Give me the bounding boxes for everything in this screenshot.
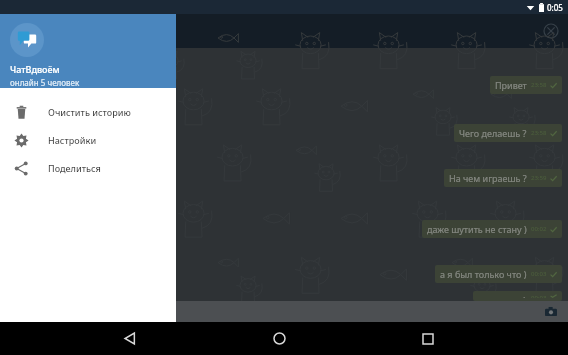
button[interactable]: Чего делаешь ? xyxy=(454,124,562,142)
staticText: Поделиться xyxy=(48,162,101,174)
staticText: Настройки xyxy=(48,134,97,146)
button[interactable]: Настройки xyxy=(0,126,176,154)
button[interactable]: а я был только что ) xyxy=(435,265,562,283)
staticText: 23:58 xyxy=(531,81,547,89)
staticText: а я был только что ) xyxy=(440,268,527,280)
staticText: 00:02 xyxy=(531,225,547,233)
button[interactable]: Back xyxy=(110,322,150,355)
staticText: На чем играешь ? xyxy=(449,172,527,184)
button[interactable]: Поделиться xyxy=(0,154,176,182)
staticText: 23:58 xyxy=(531,129,547,137)
staticText: Чего делаешь ? xyxy=(459,127,527,139)
staticText: 0:05 xyxy=(547,2,563,13)
button[interactable]: Home xyxy=(259,322,299,355)
staticText: онлайн 5 человек xyxy=(10,77,80,88)
button[interactable]: Attach photo xyxy=(542,303,560,321)
staticText: ЧатВдвоём xyxy=(10,63,60,75)
staticText: согласись ) xyxy=(478,294,527,298)
button[interactable]: согласись ) xyxy=(473,291,562,301)
button[interactable]: Очистить историю xyxy=(0,98,176,126)
button[interactable]: ЧатВдвоём xyxy=(0,14,176,88)
staticText: Очистить историю xyxy=(48,106,131,118)
button[interactable]: даже шутить не стану ) xyxy=(422,220,562,238)
staticText: 00:03 xyxy=(531,294,547,298)
staticText: 00:03 xyxy=(531,270,547,278)
button[interactable]: Recents xyxy=(408,322,448,355)
button[interactable]: Close xyxy=(540,20,562,42)
staticText: Привет xyxy=(495,79,527,91)
button[interactable]: Привет xyxy=(490,76,562,94)
staticText: даже шутить не стану ) xyxy=(427,223,527,235)
button[interactable]: На чем играешь ? xyxy=(444,169,562,187)
staticText: 23:59 xyxy=(531,174,547,182)
